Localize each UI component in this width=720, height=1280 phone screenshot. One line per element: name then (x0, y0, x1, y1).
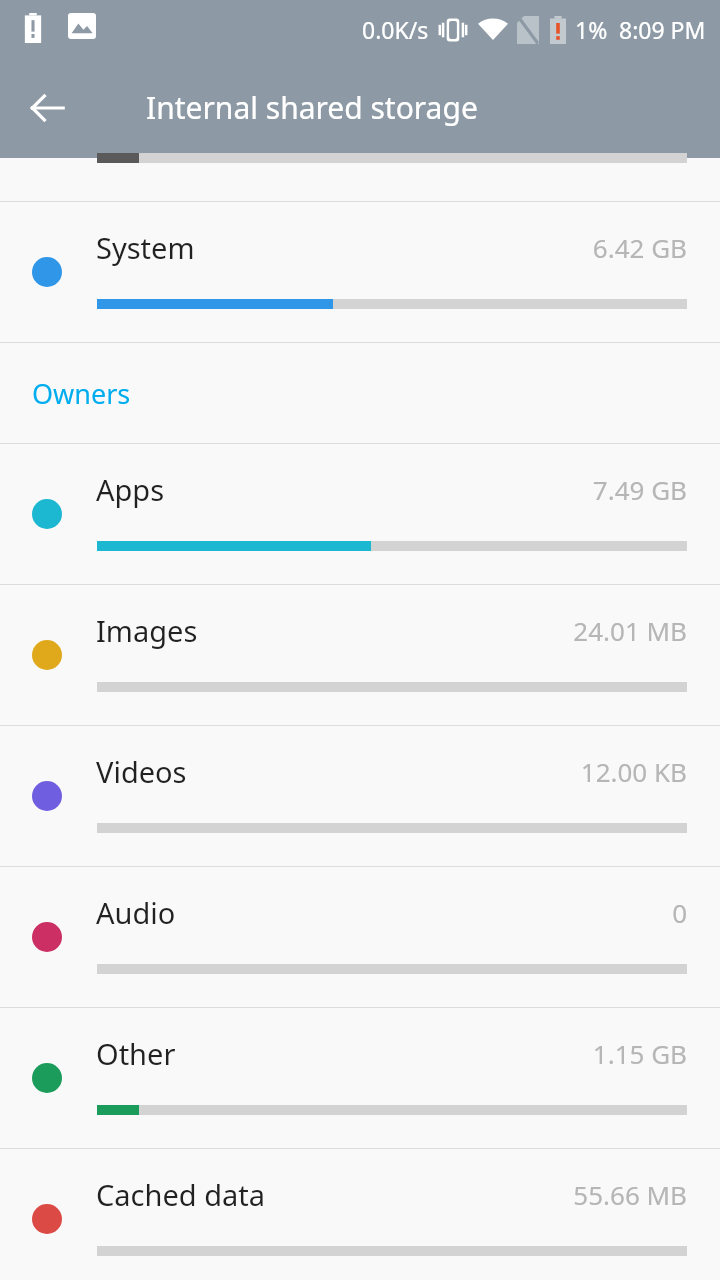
staticText: 1.15 GB (592, 1036, 687, 1071)
staticText: 0.0K/s (362, 14, 429, 45)
staticText: 12.00 KB (580, 754, 687, 789)
staticText: 6.42 GB (592, 230, 687, 265)
staticText: System (96, 228, 195, 267)
staticText: Videos (96, 752, 187, 791)
button[interactable]: Images (0, 585, 720, 725)
staticText: Apps (96, 470, 165, 509)
button[interactable]: Other (0, 1008, 720, 1148)
button[interactable]: System (0, 202, 720, 342)
button[interactable]: Back (0, 58, 100, 158)
staticText: 24.01 MB (573, 613, 687, 648)
staticText: 8:09 PM (619, 14, 706, 45)
staticText: 7.49 GB (592, 472, 687, 507)
staticText: Internal shared storage (146, 87, 478, 128)
staticText: Audio (96, 893, 176, 932)
staticText: Images (96, 611, 198, 650)
button[interactable]: Audio (0, 867, 720, 1007)
staticText: 0 (672, 895, 687, 930)
staticText: Other (96, 1034, 176, 1073)
staticText: Cached data (96, 1175, 266, 1214)
staticText: Owners (32, 375, 131, 412)
button[interactable]: Owners (0, 343, 720, 443)
button[interactable]: Videos (0, 726, 720, 866)
button[interactable]: Cached data (0, 1149, 720, 1280)
staticText: 1% (575, 14, 608, 45)
button[interactable]: Apps (0, 444, 720, 584)
staticText: 55.66 MB (573, 1177, 687, 1212)
